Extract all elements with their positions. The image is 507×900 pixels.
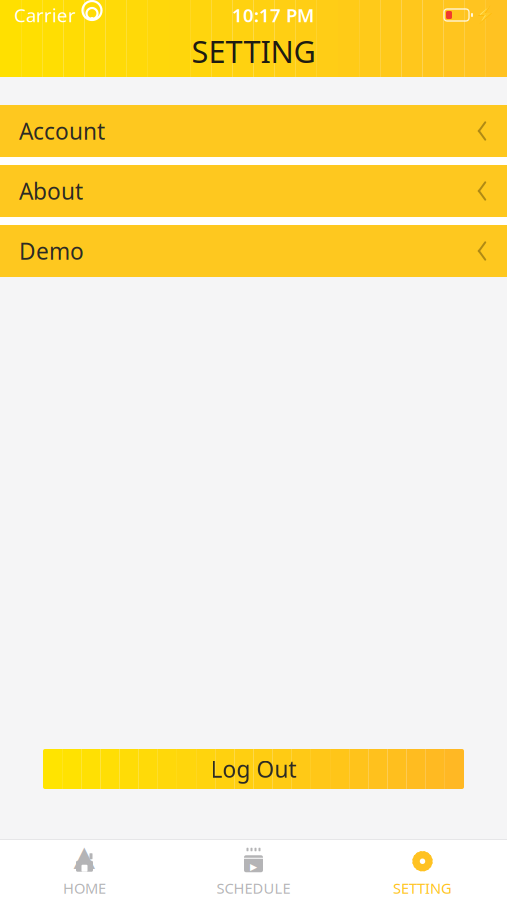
- staticText: ▶: [250, 861, 257, 872]
- button[interactable]: ▶: [169, 840, 338, 900]
- button[interactable]: SETTING: [338, 840, 507, 900]
- staticText: Carrier: [14, 3, 76, 27]
- staticText: Demo: [19, 236, 84, 266]
- button[interactable]: Demo: [0, 225, 507, 277]
- staticText: ▲: [73, 840, 95, 872]
- staticText: SETTING: [393, 878, 452, 898]
- staticText: Log Out: [210, 754, 296, 784]
- staticText: Account: [19, 116, 105, 146]
- button[interactable]: ▲: [0, 840, 169, 900]
- staticText: HOME: [63, 878, 106, 898]
- button[interactable]: Account: [0, 105, 507, 157]
- button[interactable]: About: [0, 165, 507, 217]
- staticText: 10:17 PM: [232, 3, 314, 27]
- staticText: SCHEDULE: [216, 878, 290, 898]
- button[interactable]: Log Out: [43, 749, 464, 789]
- staticText: ⚡: [475, 6, 495, 24]
- staticText: About: [19, 176, 83, 206]
- staticText: SETTING: [191, 31, 315, 71]
